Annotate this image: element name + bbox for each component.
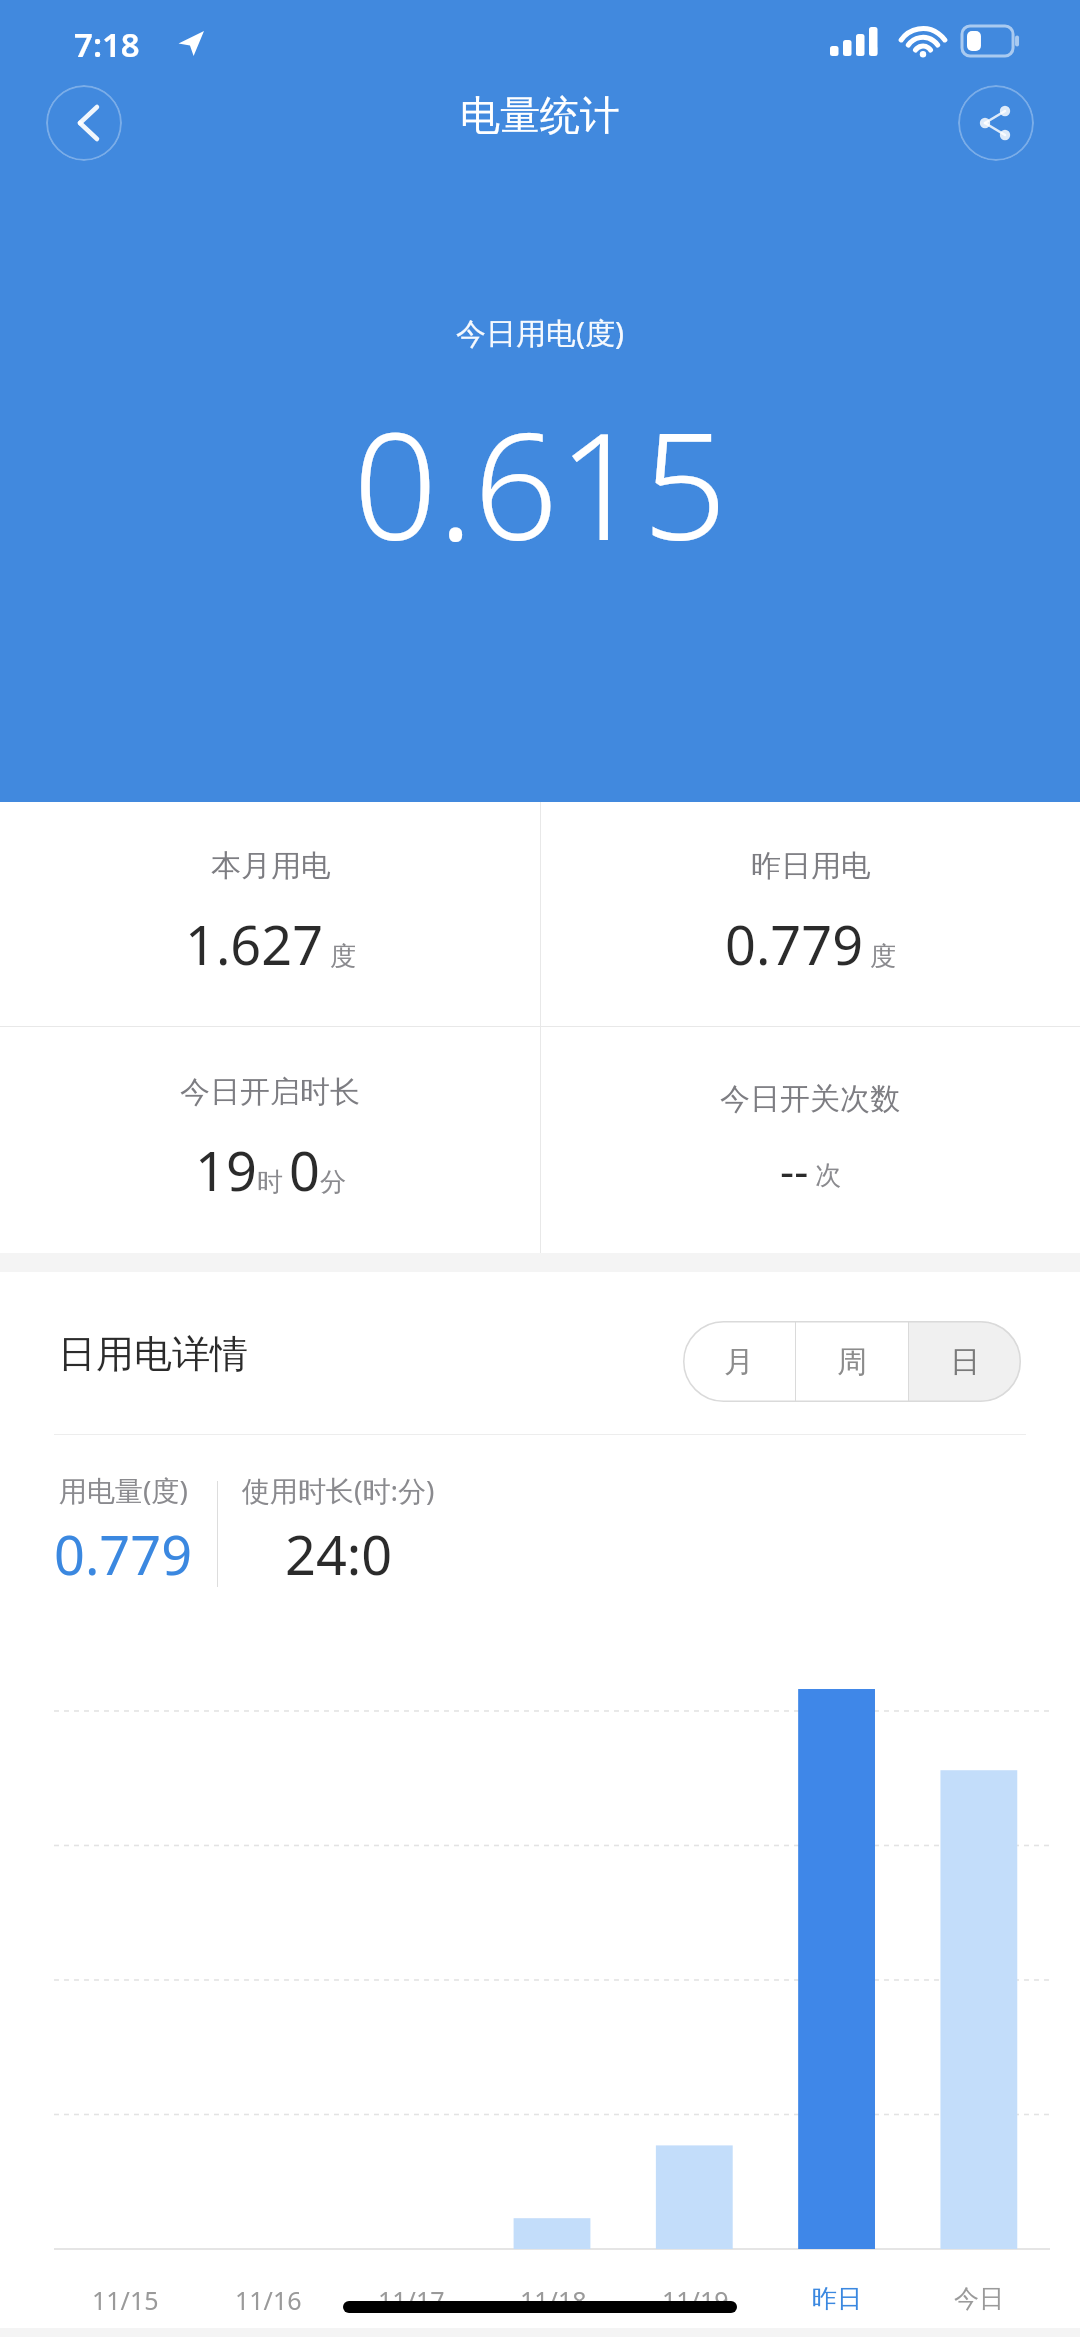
staticText: 11/16 (235, 2283, 302, 2317)
button[interactable]: 本月用电 (0, 802, 540, 1026)
staticText: 用电量(度) (59, 1471, 188, 1509)
staticText: 11/15 (92, 2283, 159, 2317)
staticText: 分 (320, 1166, 346, 1199)
staticText: 7:18 (74, 22, 140, 67)
staticText: 0.779 (725, 907, 864, 981)
staticText: 0.779 (54, 1517, 193, 1591)
staticText: 时 (257, 1166, 283, 1199)
staticText: 11/17 (378, 2283, 445, 2317)
staticText: 0 (289, 1133, 320, 1207)
staticText: -- (780, 1140, 809, 1200)
staticText: 昨日用电 (751, 847, 871, 885)
staticText: 电量统计 (0, 90, 1080, 140)
staticText: 度 (330, 940, 356, 973)
button[interactable]: 周 (796, 1321, 908, 1402)
button[interactable]: 今日开启时长 (0, 1027, 540, 1253)
staticText: 今日用电(度) (0, 312, 1080, 353)
staticText: 次 (815, 1159, 841, 1192)
button[interactable]: 今日开关次数 (540, 1027, 1080, 1253)
staticText: 本月用电 (211, 847, 331, 885)
button[interactable]: 月 (683, 1321, 795, 1402)
staticText: 0.615 (0, 382, 1080, 584)
staticText: 今日开关次数 (720, 1080, 900, 1118)
button[interactable]: 日 (909, 1321, 1021, 1402)
staticText: 11/19 (662, 2283, 729, 2317)
button[interactable]: Share (958, 85, 1034, 161)
staticText: 19 (195, 1133, 257, 1207)
button[interactable]: Back (46, 85, 122, 161)
staticText: 日用电详情 (58, 1330, 248, 1378)
staticText: 1.627 (185, 907, 324, 981)
staticText: 今日开启时长 (180, 1073, 360, 1111)
staticText: 度 (870, 940, 896, 973)
staticText: 昨日 (812, 2283, 862, 2314)
staticText: 使用时长(时:分) (242, 1471, 435, 1509)
staticText: 今日 (954, 2283, 1004, 2314)
staticText: 月 (724, 1343, 754, 1381)
staticText: 日 (950, 1343, 980, 1381)
staticText: 11/18 (520, 2283, 587, 2317)
staticText: 周 (837, 1343, 867, 1381)
staticText: 24:0 (285, 1517, 393, 1591)
button[interactable]: 昨日用电 (540, 802, 1080, 1026)
